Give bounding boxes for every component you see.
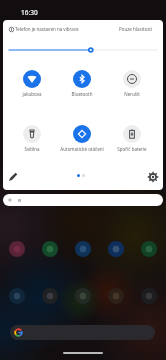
button[interactable]: Svítilna [8,125,56,152]
button[interactable] [9,288,25,304]
button[interactable]: Spořič baterie [108,125,156,152]
staticText: jakubova [8,91,56,97]
button[interactable] [9,241,25,257]
button[interactable]: Upravit [7,171,19,183]
button[interactable] [75,241,91,257]
staticText: Svítilna [8,146,56,152]
staticText: Telefon je nastaven na vibrace [15,26,79,32]
button[interactable]: jakubova [8,70,56,97]
button[interactable] [141,241,157,257]
button[interactable] [10,325,155,340]
button[interactable] [108,241,124,257]
staticText: Spořič baterie [108,146,156,152]
button[interactable]: Bluetooth [58,70,106,97]
button[interactable]: Nastavení [147,171,159,183]
button[interactable] [141,288,157,304]
button[interactable] [42,288,58,304]
staticText: 16:30 [21,8,38,17]
button[interactable] [108,288,124,304]
button[interactable] [75,288,91,304]
staticText: Automatické otáčení [58,146,106,152]
button[interactable]: Nerušit [108,70,156,97]
staticText: Bluetooth [58,91,106,97]
button[interactable]: Automatické otáčení [58,125,106,152]
staticText: Pouze hlasitostí [119,26,153,32]
button[interactable] [42,241,58,257]
staticText: Nerušit [108,91,156,97]
